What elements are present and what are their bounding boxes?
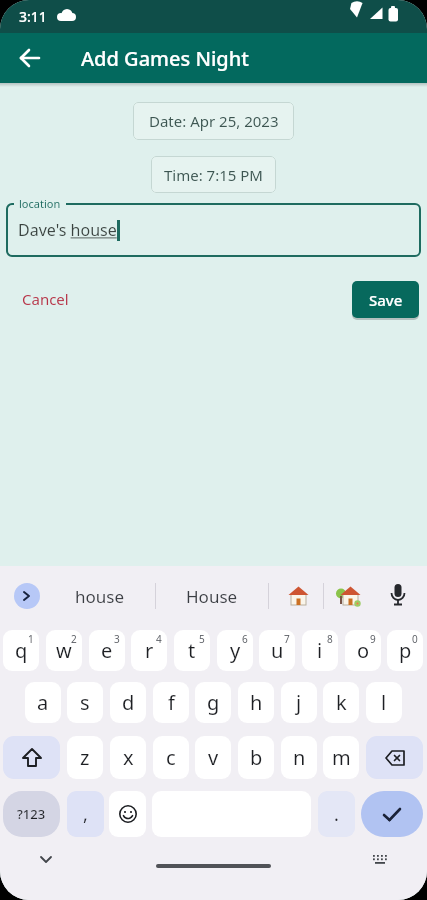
staticText: 5 — [199, 632, 205, 646]
staticText: House — [186, 585, 238, 608]
button[interactable]: o — [345, 630, 381, 671]
staticText: Date: Apr 25, 2023 — [149, 111, 279, 131]
button[interactable]: z — [67, 736, 103, 779]
staticText: Save — [369, 290, 403, 310]
button[interactable]: w — [46, 630, 82, 671]
staticText: v — [208, 744, 219, 771]
staticText: s — [80, 689, 90, 716]
staticText: 2 — [71, 632, 77, 646]
button[interactable]: v — [195, 736, 231, 779]
staticText: c — [166, 744, 176, 771]
staticText: u — [271, 637, 284, 664]
button[interactable]: g — [195, 682, 231, 723]
button[interactable]: r — [131, 630, 167, 671]
staticText: . — [334, 802, 339, 827]
staticText: q — [15, 637, 28, 664]
button[interactable]: House — [172, 580, 252, 612]
button[interactable]: q — [3, 630, 39, 671]
button[interactable]: s — [67, 682, 103, 723]
staticText: 8 — [327, 632, 333, 646]
staticText: k — [336, 689, 347, 716]
staticText: location — [19, 196, 61, 211]
button[interactable]: Save — [352, 281, 419, 318]
staticText: e — [101, 637, 113, 664]
staticText: 4 — [156, 632, 162, 646]
button[interactable]: p — [387, 630, 423, 671]
button[interactable] — [366, 736, 423, 779]
staticText: z — [80, 744, 90, 771]
button[interactable] — [14, 583, 40, 609]
staticText: 0 — [412, 632, 418, 646]
button[interactable]: Dave's house — [6, 203, 421, 257]
button[interactable]: Cancel — [10, 284, 80, 314]
staticText: 3:11 — [19, 7, 47, 26]
staticText: g — [207, 689, 220, 716]
button[interactable]: n — [281, 736, 317, 779]
staticText: j — [296, 689, 302, 716]
button[interactable]: i — [302, 630, 338, 671]
button[interactable]: d — [110, 682, 146, 723]
staticText: 7 — [284, 632, 290, 646]
staticText: Cancel — [22, 289, 69, 309]
button[interactable]: m — [323, 736, 359, 779]
button[interactable]: j — [281, 682, 317, 723]
button[interactable] — [30, 850, 62, 870]
staticText: m — [332, 744, 351, 771]
staticText: y — [230, 637, 241, 664]
button[interactable] — [109, 791, 146, 837]
staticText: w — [56, 637, 72, 664]
staticText: 9 — [370, 632, 376, 646]
staticText: f — [168, 689, 175, 716]
button[interactable] — [386, 580, 410, 612]
button[interactable]: . — [318, 791, 355, 837]
staticText: a — [37, 689, 49, 716]
staticText: house — [75, 585, 125, 608]
button[interactable]: x — [110, 736, 146, 779]
staticText: 3 — [114, 632, 120, 646]
button[interactable]: house — [60, 580, 140, 612]
button[interactable] — [336, 584, 362, 608]
staticText: Add Games Night — [81, 45, 249, 72]
staticText: Time: 7:15 PM — [164, 165, 263, 185]
staticText: t — [188, 637, 196, 664]
button[interactable] — [366, 850, 394, 870]
button[interactable]: h — [238, 682, 274, 723]
button[interactable]: e — [89, 630, 125, 671]
button[interactable]: b — [238, 736, 274, 779]
button[interactable]: l — [366, 682, 402, 723]
staticText: Dave's house — [18, 219, 117, 241]
button[interactable]: t — [174, 630, 210, 671]
staticText: 1 — [28, 632, 34, 646]
staticText: d — [122, 689, 135, 716]
staticText: b — [250, 744, 263, 771]
button[interactable] — [12, 39, 50, 77]
staticText: x — [123, 744, 134, 771]
staticText: l — [381, 689, 387, 716]
staticText: p — [399, 637, 412, 664]
button[interactable] — [156, 864, 271, 868]
button[interactable]: u — [259, 630, 295, 671]
button[interactable] — [361, 791, 423, 837]
button[interactable]: c — [153, 736, 189, 779]
button[interactable]: ?123 — [3, 791, 60, 837]
staticText: ?123 — [17, 805, 46, 823]
button[interactable]: a — [25, 682, 61, 723]
staticText: h — [250, 689, 263, 716]
button[interactable]: f — [153, 682, 189, 723]
button[interactable]: k — [323, 682, 359, 723]
button[interactable]: Date: Apr 25, 2023 — [133, 102, 294, 140]
button[interactable]: y — [217, 630, 253, 671]
button[interactable] — [287, 584, 311, 608]
button[interactable] — [3, 736, 60, 779]
staticText: i — [317, 637, 323, 664]
staticText: , — [83, 802, 88, 827]
button[interactable]: Time: 7:15 PM — [151, 156, 276, 193]
staticText: r — [145, 637, 154, 664]
staticText: 6 — [242, 632, 248, 646]
button[interactable]: , — [67, 791, 104, 837]
staticText: n — [293, 744, 306, 771]
staticText: o — [357, 637, 370, 664]
